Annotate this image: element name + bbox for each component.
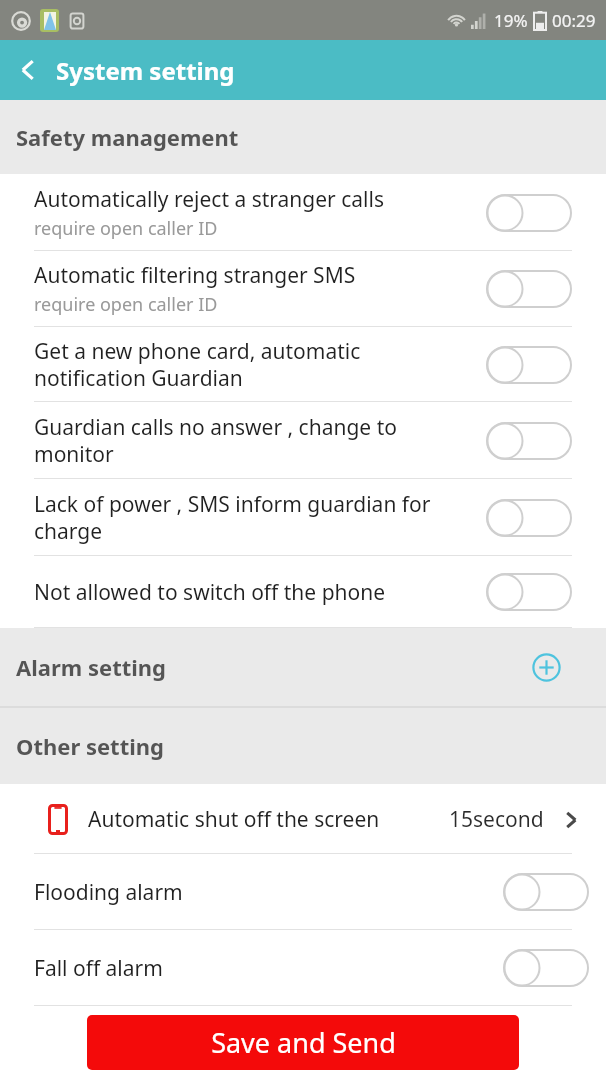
staticText: Alarm setting <box>16 652 167 682</box>
button[interactable]: Not allowed to switch off the phone <box>0 556 606 628</box>
staticText: Other setting <box>16 731 164 761</box>
button[interactable]: Back <box>0 40 56 100</box>
staticText: 15second <box>449 805 544 834</box>
button[interactable]: Guardian calls no answer , change to mon… <box>0 402 606 479</box>
button[interactable]: Automatic filtering stranger SMS <box>0 251 606 327</box>
button[interactable]: Fall off alarm <box>0 930 606 1006</box>
button[interactable]: Flooding alarm <box>0 854 606 930</box>
staticText: Not allowed to switch off the phone <box>34 578 386 607</box>
staticText: Flooding alarm <box>34 878 183 907</box>
button[interactable]: Automatic shut off the screen <box>0 784 606 854</box>
staticText: 19% <box>494 9 528 32</box>
staticText: Lack of power , SMS inform guardian for … <box>34 490 431 545</box>
staticText: System setting <box>56 54 235 87</box>
button[interactable]: Automatically reject a stranger calls <box>0 174 606 251</box>
button[interactable]: Save and Send <box>87 1015 519 1070</box>
staticText: Automatic shut off the screen <box>88 805 380 834</box>
staticText: Save and Send <box>211 1024 396 1061</box>
staticText: Automatic filtering stranger SMS <box>34 261 356 290</box>
button[interactable]: Add alarm <box>529 650 563 684</box>
staticText: Get a new phone card, automatic notifica… <box>34 337 361 392</box>
staticText: require open caller ID <box>34 216 218 241</box>
staticText: Fall off alarm <box>34 954 163 983</box>
button[interactable]: Lack of power , SMS inform guardian for … <box>0 479 606 556</box>
staticText: 00:29 <box>552 9 596 32</box>
staticText: require open caller ID <box>34 292 218 317</box>
staticText: Safety management <box>16 122 239 152</box>
button[interactable]: Get a new phone card, automatic notifica… <box>0 327 606 402</box>
staticText: Automatically reject a stranger calls <box>34 185 384 214</box>
staticText: Guardian calls no answer , change to mon… <box>34 413 397 468</box>
